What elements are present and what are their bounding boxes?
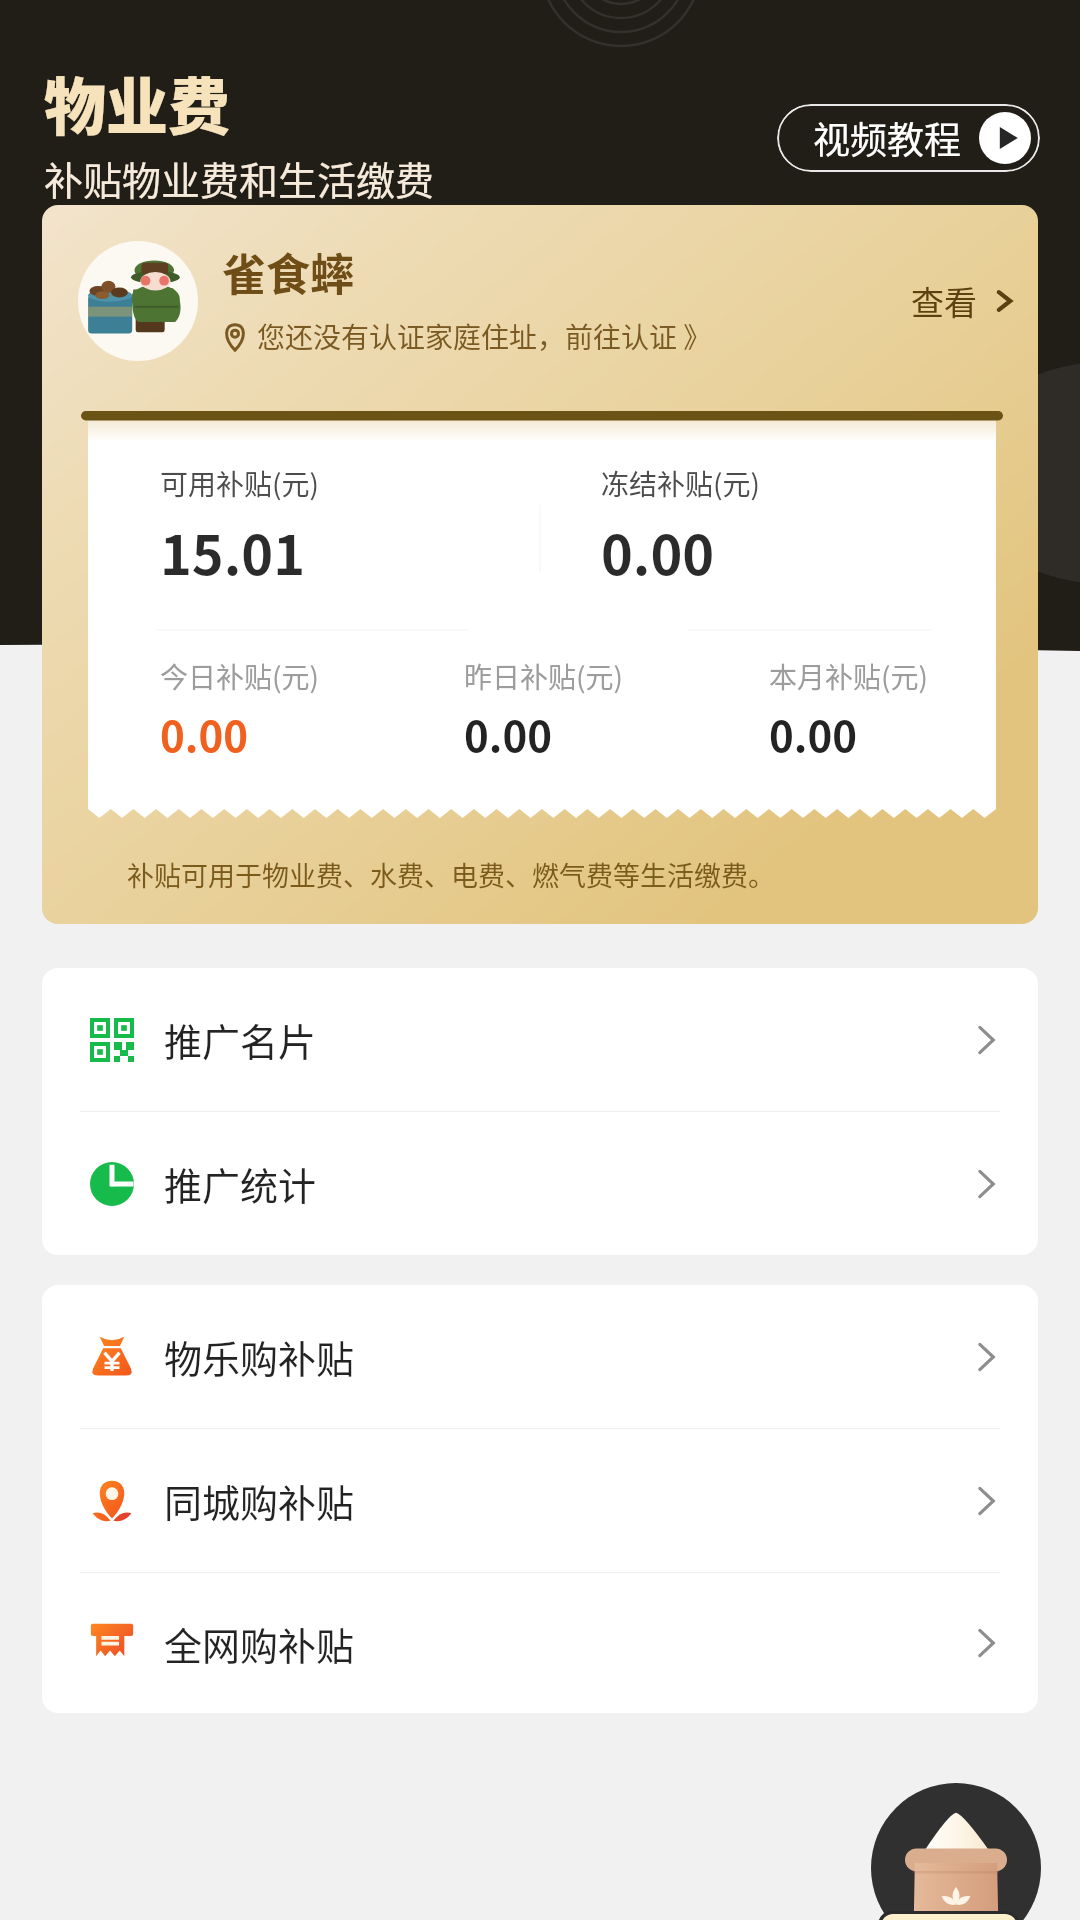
staticText: 可用补贴(元) [160,463,319,504]
staticText: 雀食蟀 [222,240,354,304]
staticText: 补贴可用于物业费、水费、电费、燃气费等生活缴费。 [127,855,775,894]
staticText: 昨日补贴(元) [464,656,623,697]
staticText: 全网购补贴 [164,1616,355,1671]
button[interactable]: Rice sack [871,1783,1041,1920]
staticText: 本月补贴(元) [769,656,928,697]
staticText: 查看 [911,277,977,325]
button[interactable]: 物乐购补贴 [42,1285,1038,1428]
button[interactable]: 全网购补贴 [42,1573,1038,1713]
staticText: 0.00 [464,703,552,764]
staticText: 同城购补贴 [164,1473,355,1528]
staticText: 您还没有认证家庭住址，前往认证 》 [257,316,712,357]
staticText: 视频教程 [813,111,961,165]
staticText: 冻结补贴(元) [601,463,760,504]
button[interactable]: 视频教程 [777,104,1040,172]
button[interactable]: 推广名片 [42,968,1038,1111]
staticText: 0.00 [769,703,857,764]
staticText: 0.00 [160,703,248,764]
button[interactable]: 推广统计 [42,1112,1038,1255]
staticText: 15.01 [160,512,305,590]
staticText: 物乐购补贴 [164,1329,355,1384]
staticText: 推广统计 [164,1156,317,1211]
staticText: 补贴物业费和生活缴费 [44,150,435,206]
staticText: 推广名片 [164,1012,317,1067]
staticText: 物业费 [44,58,231,148]
button[interactable]: Profile avatar [78,241,198,361]
button[interactable]: 同城购补贴 [42,1429,1038,1572]
staticText: 今日补贴(元) [160,656,319,697]
staticText: 0.00 [601,512,715,590]
button[interactable]: 查看 [899,265,1029,337]
